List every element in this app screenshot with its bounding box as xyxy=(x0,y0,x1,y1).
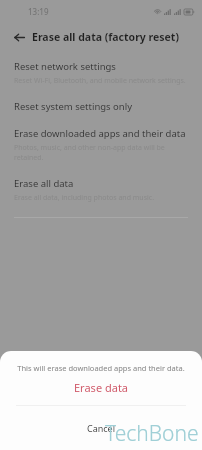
staticText: Erase all data (factory reset) xyxy=(32,30,179,44)
staticText: 13:19 xyxy=(28,6,49,17)
staticText: Reset system settings only xyxy=(14,100,133,113)
button[interactable]: Erase downloaded apps and their data xyxy=(0,125,202,165)
staticText: Erase data xyxy=(74,380,129,395)
button[interactable]: Reset network settings xyxy=(0,58,202,88)
staticText: Erase all data, including photos and mus… xyxy=(14,193,155,203)
staticText: Erase downloaded apps and their data xyxy=(14,127,186,140)
button[interactable]: Erase all data xyxy=(0,175,202,205)
staticText: Photos, music, and other non-app data wi… xyxy=(14,143,188,163)
button[interactable]: Erase data xyxy=(0,373,202,401)
staticText: TechBone xyxy=(105,419,199,448)
staticText: Reset network settings xyxy=(14,60,116,73)
staticText: Reset Wi-Fi, Bluetooth, and mobile netwo… xyxy=(14,76,186,86)
button[interactable]: Back xyxy=(6,24,32,50)
staticText: Erase all data xyxy=(14,177,74,190)
button[interactable]: Cancel xyxy=(0,406,202,450)
staticText: This will erase downloaded apps and thei… xyxy=(12,363,190,373)
staticText: Cancel xyxy=(87,422,116,434)
button[interactable]: Reset system settings only xyxy=(0,98,202,115)
